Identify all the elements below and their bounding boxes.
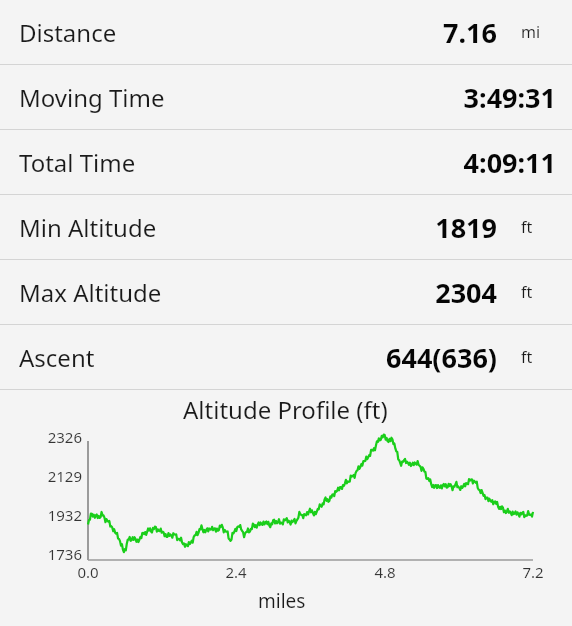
- staticText: miles: [258, 588, 306, 614]
- staticText: Max Altitude: [19, 276, 162, 309]
- staticText: 4.8: [369, 562, 401, 582]
- staticText: 3:49:31: [463, 79, 556, 116]
- staticText: 644(636): [386, 339, 497, 376]
- staticText: Ascent: [19, 341, 95, 374]
- staticText: 4:09:11: [463, 144, 556, 181]
- staticText: 2129: [0, 466, 82, 486]
- staticText: Moving Time: [19, 81, 165, 114]
- button[interactable]: Min Altitude: [0, 195, 572, 259]
- staticText: 1932: [0, 505, 82, 525]
- staticText: ft: [521, 281, 533, 303]
- staticText: 0.0: [72, 562, 104, 582]
- staticText: Min Altitude: [19, 211, 157, 244]
- staticText: 1819: [435, 209, 497, 246]
- button[interactable]: Total Time: [0, 130, 572, 194]
- staticText: ft: [521, 346, 533, 368]
- button[interactable]: Moving Time: [0, 65, 572, 129]
- staticText: mi: [521, 21, 541, 43]
- staticText: 7.16: [443, 14, 497, 51]
- staticText: Total Time: [19, 146, 136, 179]
- staticText: 1736: [0, 544, 82, 564]
- button[interactable]: Max Altitude: [0, 260, 572, 324]
- staticText: Distance: [19, 16, 117, 49]
- button[interactable]: Ascent: [0, 325, 572, 389]
- staticText: 2304: [435, 274, 497, 311]
- button[interactable]: Distance: [0, 0, 572, 64]
- staticText: 7.2: [517, 562, 549, 582]
- staticText: ft: [521, 216, 533, 238]
- staticText: Altitude Profile (ft): [183, 393, 388, 426]
- staticText: 2.4: [220, 562, 252, 582]
- staticText: 2326: [0, 427, 82, 447]
